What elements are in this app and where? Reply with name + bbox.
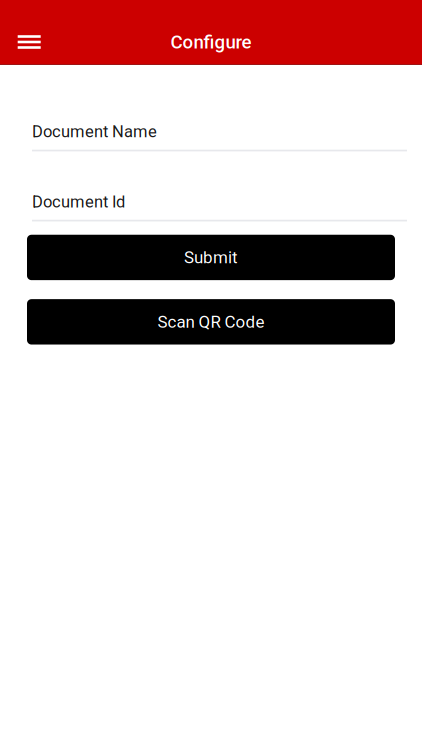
button[interactable]: Scan QR Code bbox=[27, 299, 395, 345]
button[interactable]: Document Id bbox=[32, 192, 407, 221]
staticText: Document Id bbox=[32, 192, 125, 211]
button[interactable]: Document Name bbox=[32, 122, 407, 151]
button[interactable]: Submit bbox=[27, 235, 395, 280]
staticText: Configure bbox=[170, 31, 251, 53]
staticText: Scan QR Code bbox=[157, 312, 264, 332]
button[interactable]: Menu bbox=[9, 19, 49, 64]
staticText: Document Name bbox=[32, 122, 157, 141]
staticText: Submit bbox=[184, 247, 238, 267]
